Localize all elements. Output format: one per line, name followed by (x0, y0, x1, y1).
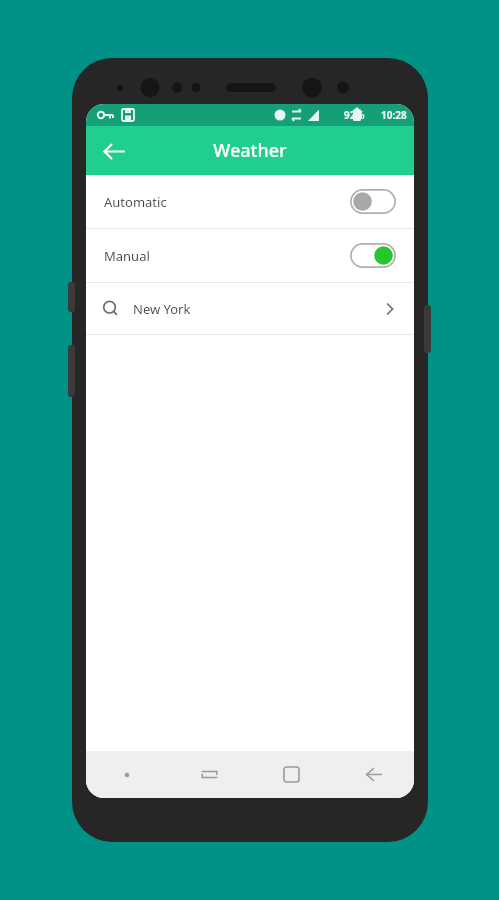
button[interactable]: Back (96, 134, 130, 168)
staticText: Manual (104, 247, 350, 265)
button[interactable]: Off (350, 189, 396, 214)
button[interactable]: Automatic (86, 175, 414, 228)
staticText: 10:28 (381, 108, 407, 122)
button[interactable]: New York (86, 283, 414, 334)
button[interactable]: Manual (86, 229, 414, 282)
staticText: 92% (344, 108, 365, 122)
button[interactable]: Back (332, 751, 414, 798)
staticText: Automatic (104, 193, 350, 211)
button[interactable]: On (350, 243, 396, 268)
staticText: New York (133, 300, 382, 318)
button[interactable]: Menu (86, 751, 168, 798)
staticText: Weather (213, 138, 287, 163)
button[interactable]: Home (250, 751, 332, 798)
button[interactable]: Recents (168, 751, 250, 798)
